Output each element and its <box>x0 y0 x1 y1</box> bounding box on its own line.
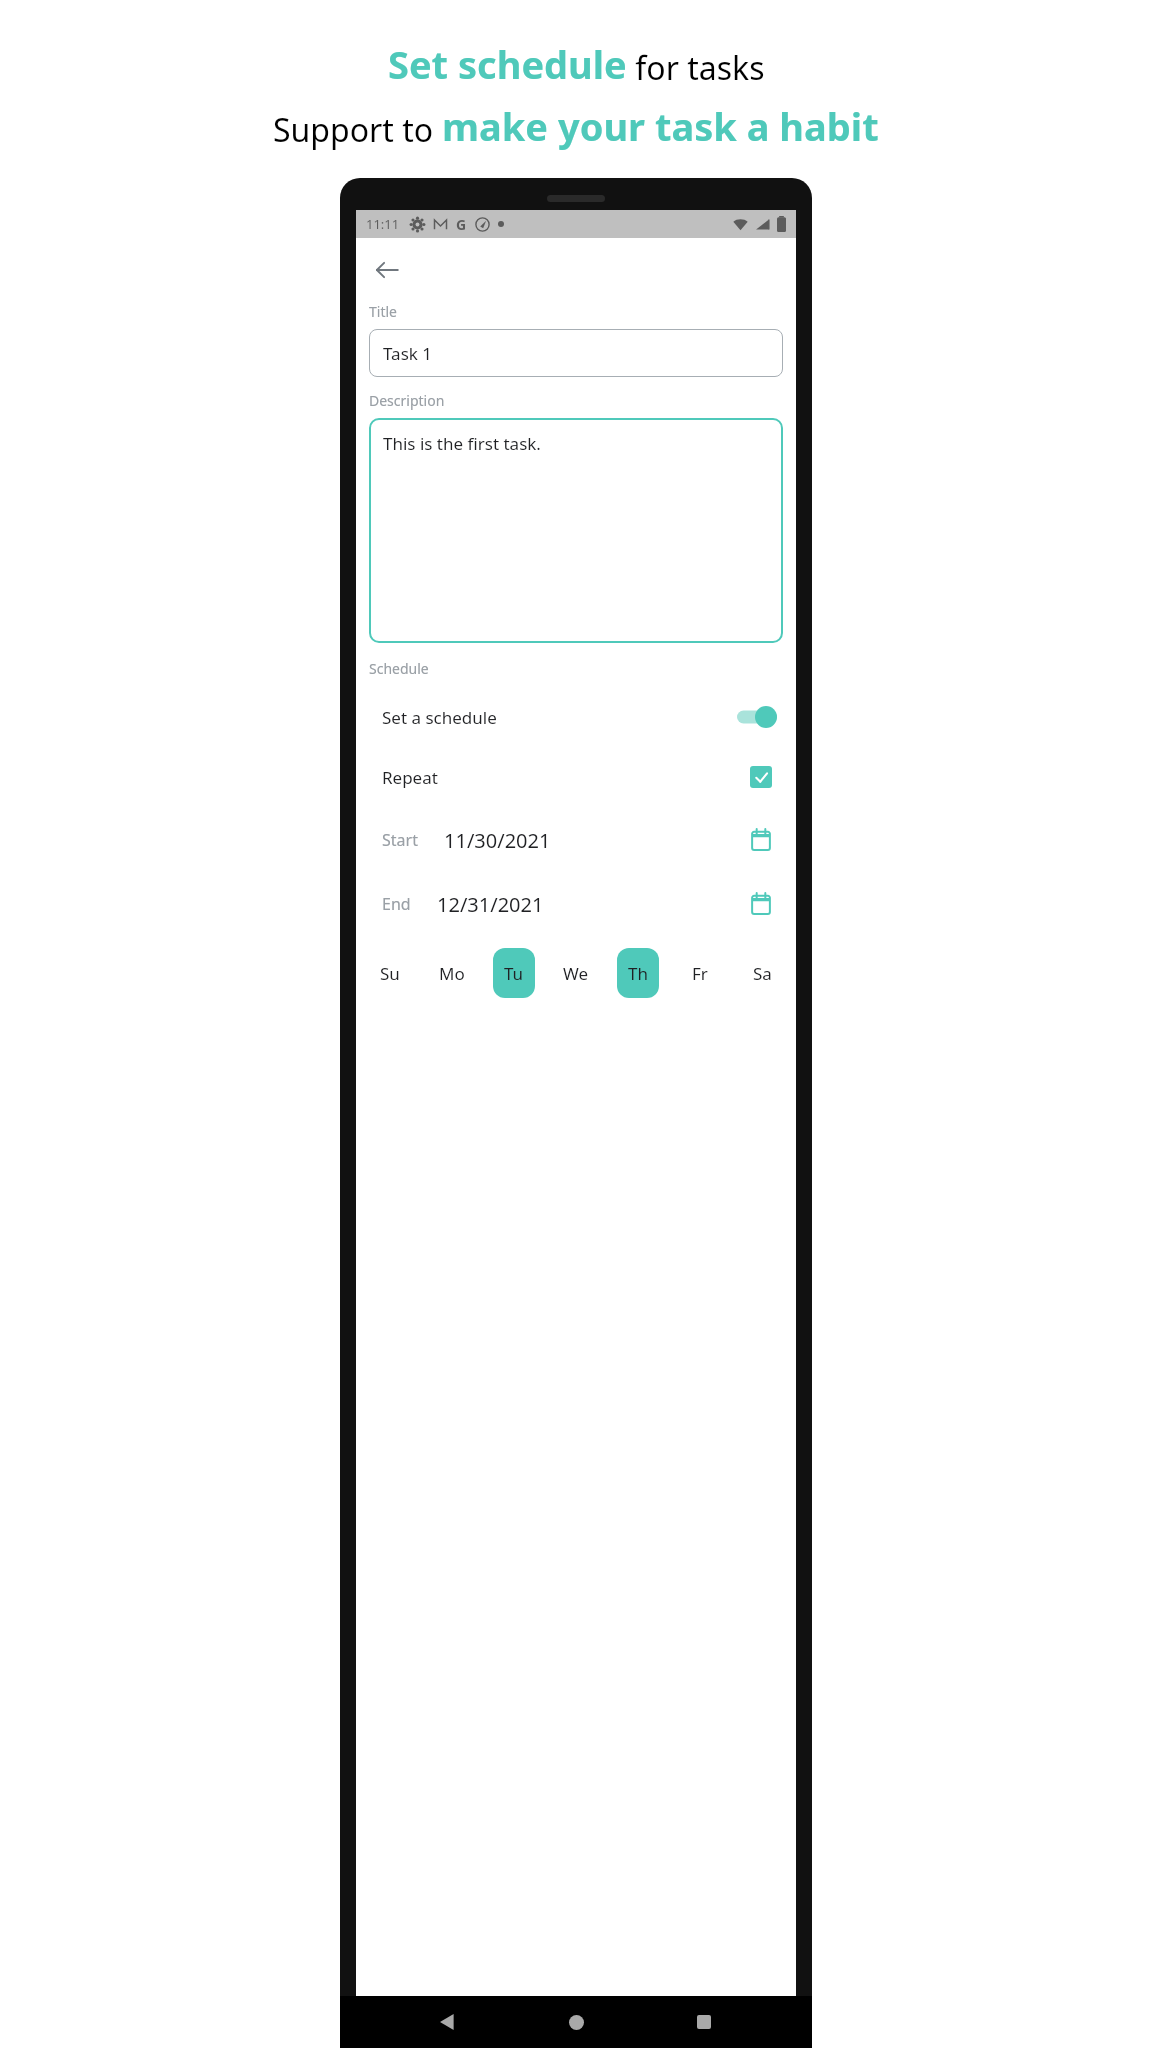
staticText: Task 1 <box>383 342 432 365</box>
staticText: End <box>382 893 411 915</box>
staticText: We <box>563 962 589 985</box>
button[interactable]: Fr <box>679 948 721 998</box>
staticText: 11/30/2021 <box>444 827 551 854</box>
button[interactable]: We <box>555 948 597 998</box>
staticText: Start <box>382 829 418 851</box>
staticText: Su <box>380 962 400 985</box>
staticText: This is the first task. <box>383 432 541 455</box>
button[interactable]: This is the first task. <box>369 418 783 643</box>
staticText: Set a schedule <box>382 706 497 729</box>
staticText: Th <box>628 962 648 985</box>
button[interactable]: Start <box>369 820 783 860</box>
staticText: Mo <box>439 962 465 985</box>
staticText: for tasks <box>627 46 765 90</box>
button[interactable]: Tu <box>493 948 535 998</box>
button[interactable]: Task 1 <box>369 329 783 377</box>
staticText: Sa <box>753 962 772 985</box>
button[interactable]: Recents <box>684 2002 724 2042</box>
button[interactable]: Th <box>617 948 659 998</box>
staticText: make your task a habit <box>442 100 879 152</box>
button[interactable]: Home <box>556 2002 596 2042</box>
button[interactable]: Back <box>428 2002 468 2042</box>
staticText: Schedule <box>369 659 429 678</box>
button[interactable]: Mo <box>431 948 473 998</box>
staticText: G <box>456 215 467 234</box>
staticText: Support to <box>273 108 442 152</box>
button[interactable]: Back <box>369 252 405 288</box>
staticText: 12/31/2021 <box>437 891 544 918</box>
staticText: Set schedule <box>388 38 627 90</box>
staticText: Title <box>369 302 397 321</box>
staticText: Description <box>369 391 445 410</box>
staticText: Fr <box>692 962 708 985</box>
other: Pick date <box>746 889 776 919</box>
other: Pick date <box>746 825 776 855</box>
button[interactable]: Set a schedule <box>369 700 783 734</box>
button[interactable]: Repeat <box>369 760 783 794</box>
staticText: 11:11 <box>366 215 400 233</box>
button[interactable]: Sa <box>741 948 783 998</box>
staticText: Repeat <box>382 766 438 789</box>
button[interactable]: End <box>369 884 783 924</box>
button[interactable]: Su <box>369 948 411 998</box>
staticText: Tu <box>504 962 524 985</box>
